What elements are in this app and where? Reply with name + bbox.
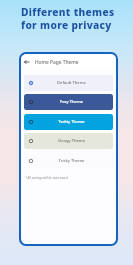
button[interactable]: Tricky Theme — [24, 153, 113, 169]
staticText: Fozy Theme — [27, 99, 113, 105]
button[interactable]: Googy Theme — [24, 133, 113, 149]
staticText: Tricky Theme — [27, 158, 113, 164]
staticText: * All settings will be auto saved — [25, 176, 68, 180]
staticText: Different themes for more privacy — [21, 5, 115, 32]
button[interactable]: Fozy Theme — [24, 94, 113, 110]
staticText: Twitty Theme — [27, 119, 113, 125]
button[interactable]: Twitty Theme — [24, 114, 113, 130]
staticText: Home Page Theme — [35, 59, 79, 66]
staticText: Googy Theme — [27, 138, 113, 144]
button[interactable]: Back — [21, 55, 32, 69]
button[interactable]: Default Theme — [24, 75, 113, 91]
staticText: Default Theme — [27, 80, 113, 86]
